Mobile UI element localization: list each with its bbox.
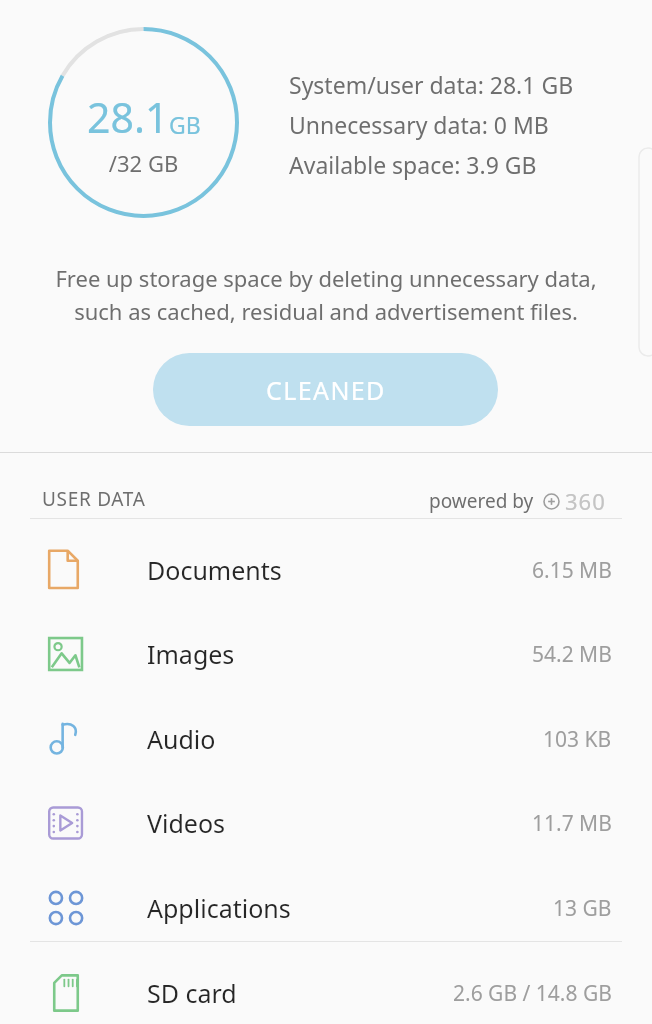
button[interactable]: SD card [0, 951, 652, 1024]
staticText: Applications [147, 891, 291, 925]
staticText: Videos [147, 806, 226, 840]
staticText: Documents [147, 553, 282, 587]
staticText: 28.1 [87, 89, 169, 145]
staticText: Available space: 3.9 GB [289, 149, 537, 180]
staticText: 13 GB [553, 894, 612, 923]
button[interactable]: Videos [0, 781, 652, 865]
button[interactable]: Documents [0, 528, 652, 612]
staticText: /32 GB [48, 148, 239, 178]
staticText: GB [169, 109, 201, 140]
staticText: 103 KB [543, 725, 612, 754]
staticText: CLEANED [266, 373, 386, 407]
staticText: Unnecessary data: 0 MB [289, 109, 549, 140]
staticText: 6.15 MB [532, 556, 612, 585]
staticText: 2.6 GB / 14.8 GB [453, 979, 612, 1008]
staticText: 360 [565, 486, 606, 516]
staticText: 54.2 MB [532, 640, 612, 669]
staticText: Audio [147, 722, 216, 756]
button[interactable]: CLEANED [153, 353, 498, 426]
staticText: 11.7 MB [532, 809, 612, 838]
staticText: USER DATA [42, 486, 146, 512]
staticText: Free up storage space by deleting unnece… [20, 263, 632, 326]
staticText: SD card [147, 976, 237, 1010]
other: Edge panel handle [639, 148, 652, 356]
staticText: Images [147, 637, 235, 671]
staticText: powered by [429, 488, 534, 514]
button[interactable]: Audio [0, 697, 652, 781]
staticText: System/user data: 28.1 GB [289, 69, 574, 100]
button[interactable]: Applications [0, 866, 652, 950]
button[interactable]: Images [0, 612, 652, 696]
